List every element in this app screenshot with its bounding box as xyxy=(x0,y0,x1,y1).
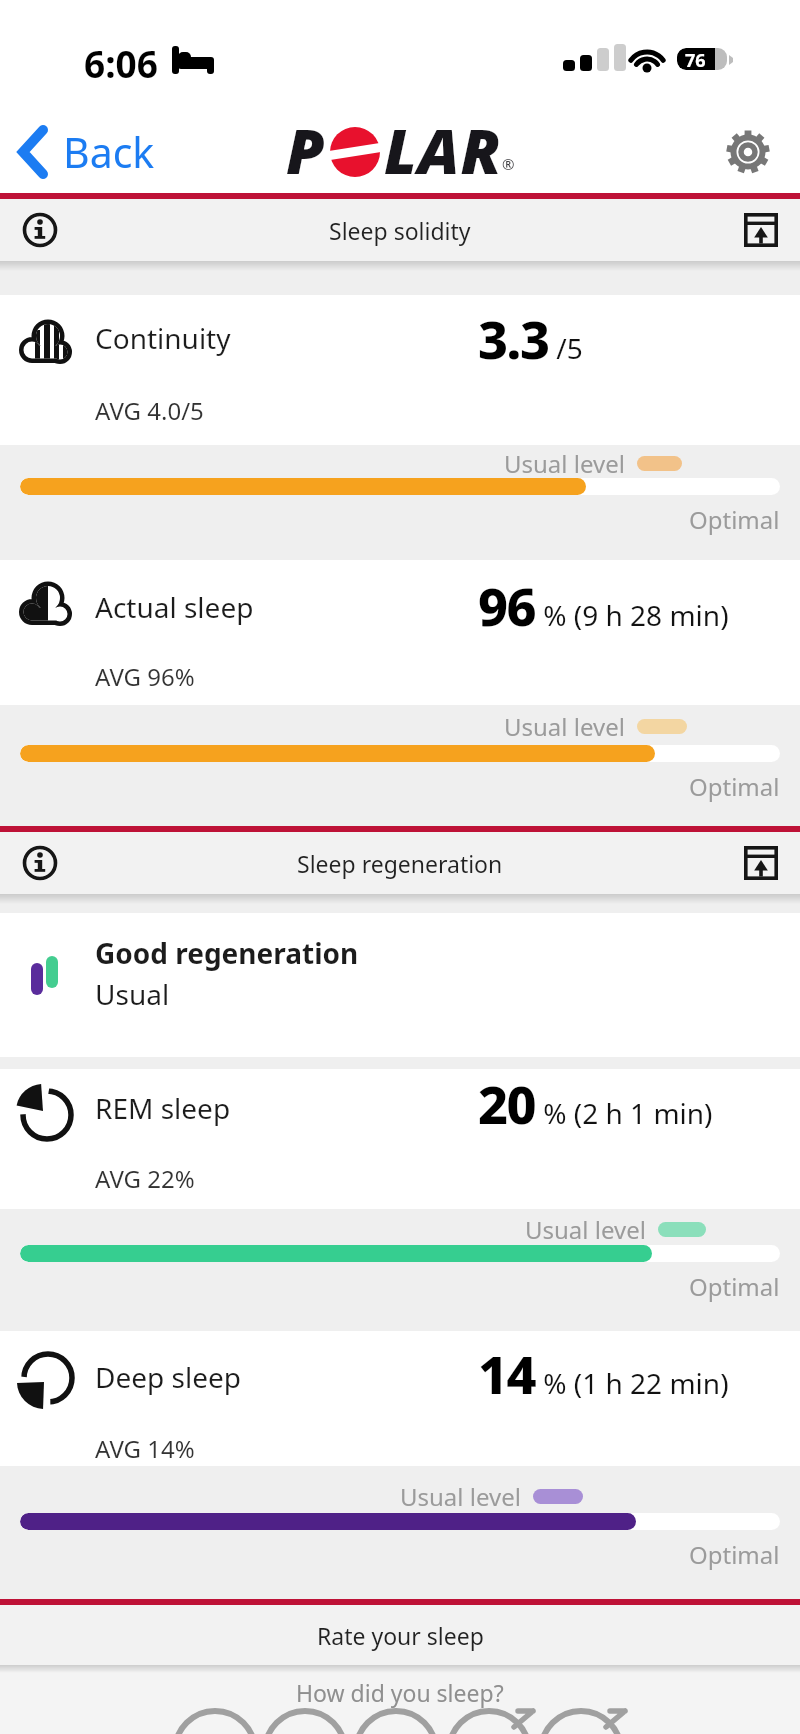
staticText: 76 xyxy=(685,48,706,70)
button[interactable]: Actual sleep xyxy=(0,560,800,705)
button[interactable] xyxy=(175,1711,255,1734)
staticText: Actual sleep xyxy=(95,588,254,626)
staticText: Deep sleep xyxy=(95,1358,241,1396)
button[interactable] xyxy=(744,213,778,247)
button[interactable]: Deep sleep xyxy=(0,1331,800,1466)
button[interactable]: Continuity xyxy=(0,295,800,445)
staticText: AVG 96% xyxy=(95,660,195,693)
staticText: 3.3 xyxy=(478,303,549,374)
staticText: Usual level xyxy=(400,1480,521,1513)
staticText: Optimal xyxy=(689,770,780,803)
button[interactable]: Good regeneration xyxy=(0,913,800,1057)
staticText: % (9 h 28 min) xyxy=(536,596,729,634)
button[interactable]: Back xyxy=(18,124,155,180)
staticText: 14 xyxy=(478,1338,536,1409)
button[interactable] xyxy=(265,1711,345,1734)
staticText: 6:06 xyxy=(84,38,158,88)
button[interactable] xyxy=(541,1711,621,1734)
staticText: Continuity xyxy=(95,319,231,357)
staticText: How did you sleep? xyxy=(296,1677,504,1708)
staticText: Usual level xyxy=(504,447,625,480)
button[interactable]: P xyxy=(286,108,515,191)
staticText: Usual level xyxy=(504,710,625,743)
button[interactable] xyxy=(22,845,58,881)
staticText: AVG 14% xyxy=(95,1432,195,1465)
staticText: Usual xyxy=(95,975,170,1013)
staticText: LAR xyxy=(384,108,502,191)
staticText: P xyxy=(286,108,326,191)
staticText: Optimal xyxy=(689,503,780,536)
staticText: % (1 h 22 min) xyxy=(536,1364,729,1402)
button[interactable] xyxy=(356,1711,436,1734)
button[interactable]: REM sleep xyxy=(0,1069,800,1209)
staticText: Optimal xyxy=(689,1270,780,1303)
staticText: Good regeneration xyxy=(95,934,359,972)
staticText: /5 xyxy=(549,329,583,367)
button[interactable] xyxy=(744,846,778,880)
staticText: Back xyxy=(63,124,155,180)
staticText: % (2 h 1 min) xyxy=(536,1094,713,1132)
button[interactable] xyxy=(22,212,58,248)
staticText: AVG 22% xyxy=(95,1162,195,1195)
staticText: 96 xyxy=(478,570,536,641)
staticText: Sleep regeneration xyxy=(297,848,503,879)
staticText: Rate your sleep xyxy=(317,1620,484,1651)
staticText: Optimal xyxy=(689,1538,780,1571)
staticText: AVG 4.0/5 xyxy=(95,394,204,427)
staticText: 20 xyxy=(478,1068,536,1139)
staticText: REM sleep xyxy=(95,1089,231,1127)
staticText: ® xyxy=(502,154,515,174)
button[interactable] xyxy=(449,1711,529,1734)
staticText: Sleep solidity xyxy=(329,215,471,246)
button[interactable] xyxy=(726,130,770,174)
staticText: Usual level xyxy=(525,1213,646,1246)
